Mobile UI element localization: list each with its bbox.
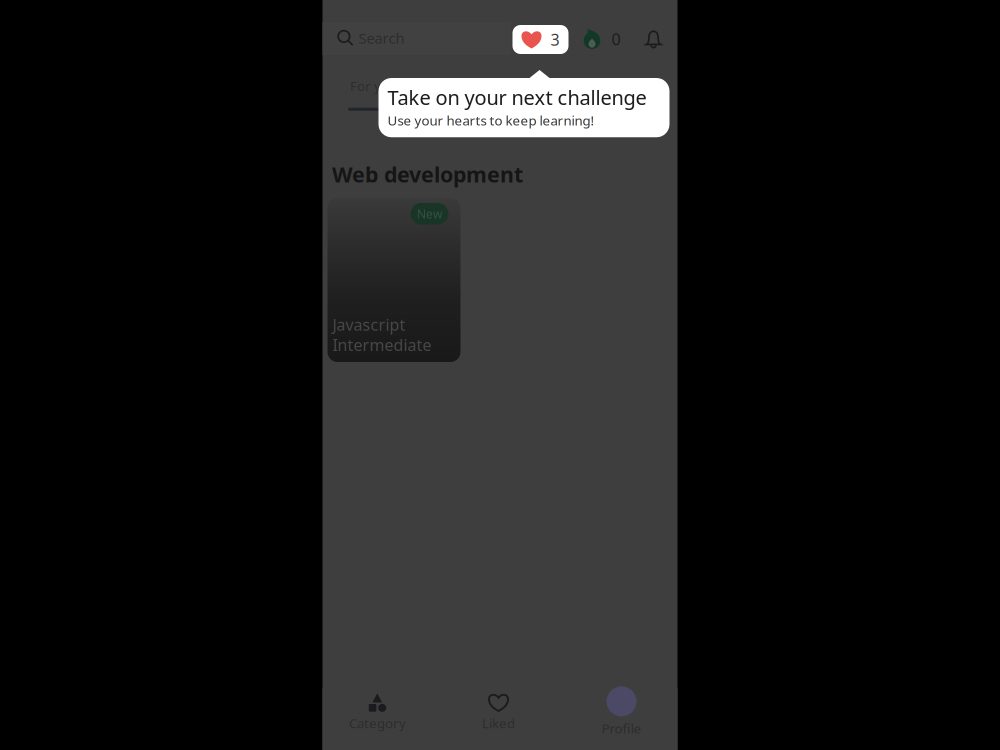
button[interactable]: Hearts: 3 [512, 25, 568, 54]
staticText: Search [358, 28, 404, 48]
staticText: Profile [601, 719, 641, 737]
staticText: Javascript [332, 314, 405, 335]
staticText: Take on your next challenge [387, 84, 646, 111]
staticText: Intermediate [332, 334, 431, 355]
staticText: Liked [482, 714, 515, 732]
staticText: 3 [550, 29, 559, 50]
staticText: Use your hearts to keep learning! [387, 112, 594, 129]
button[interactable]: Streak: 0 [583, 28, 620, 50]
button[interactable]: Search [337, 25, 487, 51]
button[interactable]: Profile [566, 686, 676, 737]
staticText: 0 [611, 28, 620, 50]
button[interactable]: Liked [443, 693, 553, 732]
staticText: For you [350, 77, 397, 95]
button[interactable]: New [327, 198, 460, 362]
staticText: Category [349, 714, 406, 732]
button[interactable]: For you [348, 77, 401, 111]
button[interactable]: Notifications [640, 27, 666, 51]
staticText: New [417, 206, 442, 222]
button[interactable]: Category [322, 693, 432, 732]
staticText: Web development [332, 160, 523, 188]
